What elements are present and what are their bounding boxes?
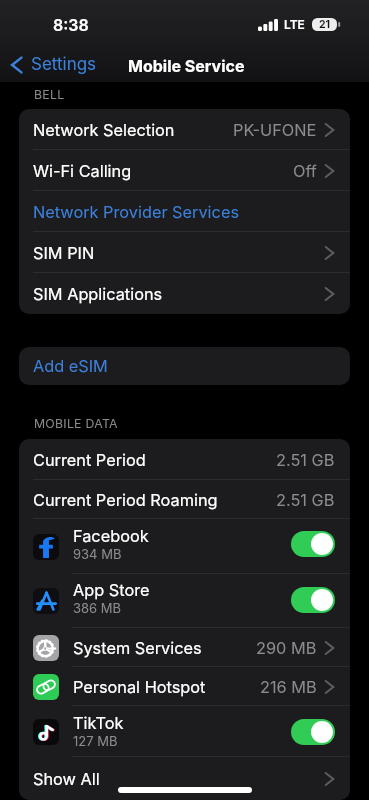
staticText: SIM PIN: [33, 243, 95, 263]
button[interactable]: Network Provider Services: [19, 191, 350, 232]
button[interactable]: Add eSIM: [19, 347, 350, 385]
button[interactable]: SIM PIN: [19, 232, 350, 273]
button[interactable]: SIM Applications: [19, 273, 350, 314]
button[interactable]: Settings: [0, 49, 105, 78]
staticText: System Services: [73, 638, 202, 658]
staticText: LTE: [284, 17, 305, 32]
staticText: 2.51 GB: [276, 450, 335, 470]
button[interactable]: Current Period: [19, 439, 350, 480]
button[interactable]: Toggle: [291, 587, 335, 613]
staticText: 934 MB: [73, 546, 122, 562]
staticText: BELL: [34, 87, 65, 102]
staticText: Current Period Roaming: [33, 490, 218, 510]
staticText: TikTok: [73, 713, 124, 733]
staticText: Wi-Fi Calling: [33, 161, 132, 181]
button[interactable]: Personal Hotspot: [19, 667, 350, 706]
staticText: Mobile Service: [128, 56, 245, 75]
staticText: Network Provider Services: [33, 202, 239, 222]
staticText: Facebook: [73, 526, 149, 546]
staticText: App Store: [73, 580, 150, 600]
staticText: MOBILE DATA: [34, 416, 118, 431]
staticText: Settings: [31, 54, 97, 75]
button[interactable]: App Store: [19, 574, 350, 628]
staticText: 290 MB: [256, 638, 317, 658]
button[interactable]: Toggle: [291, 719, 335, 745]
button[interactable]: Toggle: [291, 531, 335, 557]
staticText: Current Period: [33, 450, 146, 470]
staticText: PK-UFONE: [233, 120, 317, 140]
button[interactable]: System Services: [19, 628, 350, 667]
button[interactable]: Current Period Roaming: [19, 480, 350, 519]
staticText: Show All: [33, 769, 100, 789]
staticText: 386 MB: [73, 600, 122, 616]
staticText: 8:38: [53, 15, 89, 34]
staticText: SIM Applications: [33, 284, 163, 304]
staticText: Off: [293, 161, 317, 181]
button[interactable]: TikTok: [19, 706, 350, 757]
button[interactable]: Show All: [19, 757, 350, 800]
staticText: 216 MB: [260, 677, 317, 697]
staticText: 21: [319, 18, 331, 31]
staticText: Personal Hotspot: [73, 677, 206, 697]
staticText: Add eSIM: [33, 356, 108, 376]
button[interactable]: Wi-Fi Calling: [19, 150, 350, 191]
staticText: 2.51 GB: [276, 490, 335, 510]
button[interactable]: Facebook: [19, 519, 350, 574]
button[interactable]: Network Selection: [19, 109, 350, 150]
staticText: Network Selection: [33, 120, 175, 140]
staticText: 127 MB: [73, 733, 118, 749]
